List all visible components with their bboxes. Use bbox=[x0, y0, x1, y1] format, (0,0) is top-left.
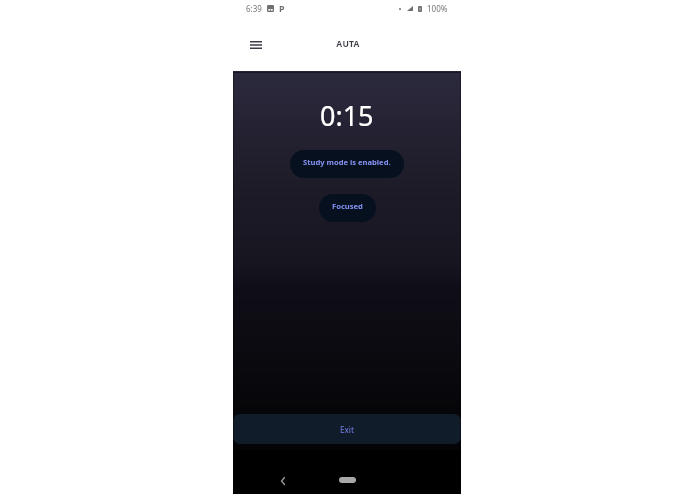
button[interactable]: Back bbox=[274, 472, 292, 490]
staticText: Exit bbox=[340, 424, 355, 435]
staticText: 100% bbox=[427, 3, 448, 14]
button[interactable]: Home bbox=[339, 477, 356, 483]
staticText: AUTA bbox=[336, 38, 360, 50]
staticText: P bbox=[279, 2, 285, 14]
staticText: 0:15 bbox=[320, 97, 374, 134]
button[interactable]: Study mode is enabled. bbox=[290, 150, 404, 178]
button[interactable]: Menu bbox=[244, 33, 268, 57]
staticText: 6:39 bbox=[246, 3, 262, 14]
staticText: Study mode is enabled. bbox=[303, 157, 391, 167]
button[interactable]: Focused bbox=[319, 194, 376, 222]
button[interactable]: Exit bbox=[233, 414, 461, 444]
staticText: Focused bbox=[332, 201, 363, 211]
